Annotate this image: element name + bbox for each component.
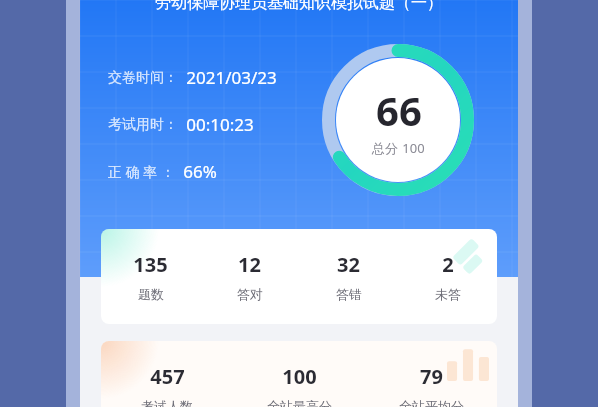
button[interactable]: 2	[398, 251, 497, 302]
staticText: 00:10:23	[186, 113, 254, 136]
staticText: 457	[150, 363, 185, 390]
button[interactable]: 劳动保障协理员基础知识模拟试题（一）	[80, 0, 518, 22]
staticText: 考试用时：	[108, 116, 178, 134]
button[interactable]: Edit	[101, 229, 497, 324]
staticText: 交卷时间：	[108, 69, 178, 87]
staticText: 2021/03/23	[186, 66, 277, 89]
other: Statistics	[447, 345, 489, 381]
staticText: 32	[337, 251, 360, 278]
staticText: 答对	[237, 286, 263, 302]
staticText: 正 确 率 ：	[108, 162, 175, 181]
staticText: 2	[442, 251, 454, 278]
button[interactable]: 32	[299, 251, 398, 302]
staticText: 全站最高分	[267, 398, 332, 407]
staticText: 题数	[138, 286, 164, 302]
button[interactable]: 79	[365, 363, 497, 407]
staticText: 66	[376, 83, 422, 137]
button[interactable]: 135	[101, 251, 200, 302]
staticText: 100	[402, 139, 425, 157]
staticText: 135	[133, 251, 168, 278]
button[interactable]: 100	[233, 363, 365, 407]
staticText: 全站平均分	[399, 398, 464, 407]
staticText: 66%	[183, 160, 217, 183]
staticText: 12	[238, 251, 261, 278]
button[interactable]: 12	[200, 251, 299, 302]
staticText: 100	[282, 363, 317, 390]
staticText: 79	[420, 363, 443, 390]
button[interactable]: 457	[101, 363, 233, 407]
staticText: 总分	[372, 140, 398, 156]
staticText: 劳动保障协理员基础知识模拟试题（一）	[155, 0, 443, 13]
staticText: 考试人数	[141, 398, 193, 407]
button[interactable]: Statistics	[101, 341, 497, 407]
staticText: 未答	[435, 286, 461, 302]
staticText: 答错	[336, 286, 362, 302]
other: Edit	[447, 233, 491, 277]
